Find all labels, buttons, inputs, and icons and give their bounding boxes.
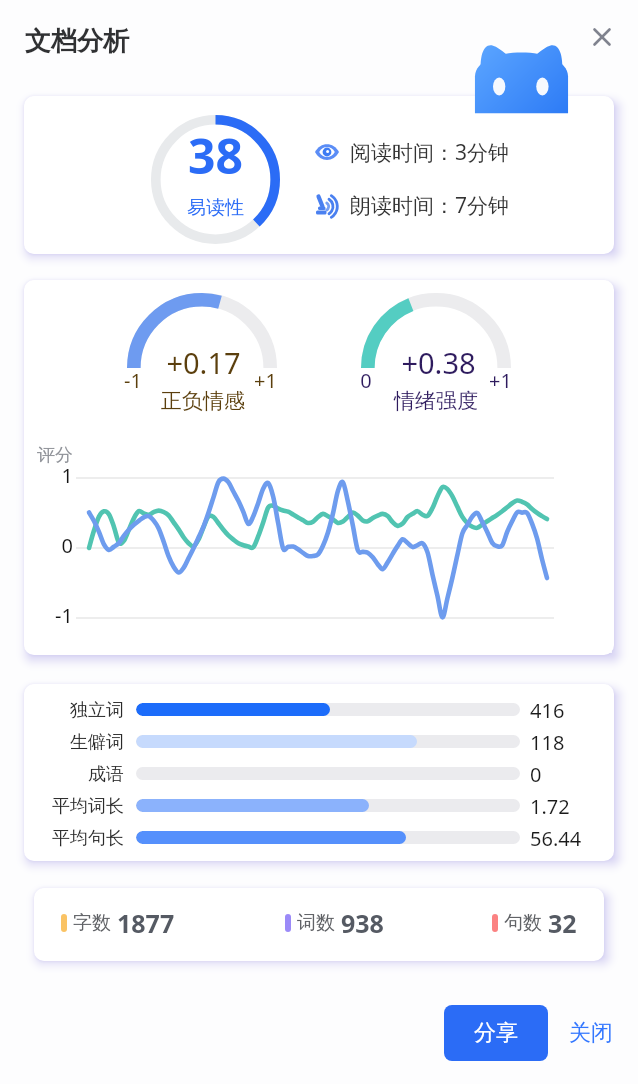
staticText: +0.38 [401, 343, 476, 382]
staticText: 正负情感 [161, 388, 245, 414]
staticText: 118 [530, 729, 565, 756]
staticText: 情绪强度 [394, 388, 478, 414]
staticText: 平均句长 [52, 827, 124, 850]
staticText: 分享 [474, 1019, 518, 1047]
staticText: 56.44 [530, 825, 582, 852]
staticText: 字数 [73, 911, 111, 935]
staticText: 0 [360, 367, 372, 394]
staticText: 32 [548, 906, 577, 940]
staticText: 关闭 [569, 1019, 613, 1047]
staticText: +0.17 [166, 343, 241, 382]
staticText: 平均词长 [52, 795, 124, 818]
staticText: +1 [489, 367, 512, 394]
staticText: 独立词 [70, 699, 124, 722]
staticText: 0 [530, 761, 542, 788]
staticText: 评分 [37, 444, 73, 467]
staticText: 文档分析 [25, 25, 129, 58]
staticText: 938 [341, 906, 384, 940]
staticText: 词数 [297, 911, 335, 935]
button[interactable]: 分享 [444, 1005, 548, 1061]
staticText: 38 [188, 123, 243, 188]
staticText: 1.72 [530, 793, 570, 820]
staticText: 阅读时间：3分钟 [350, 138, 510, 167]
staticText: 1877 [117, 906, 175, 940]
staticText: -1 [124, 367, 142, 394]
button[interactable]: 关闭 [560, 1005, 622, 1061]
staticText: +1 [254, 367, 277, 394]
staticText: 1 [61, 462, 73, 489]
staticText: 句数 [504, 911, 542, 935]
staticText: 0 [61, 532, 73, 559]
staticText: -1 [55, 602, 73, 629]
staticText: 生僻词 [70, 731, 124, 754]
staticText: 成语 [88, 763, 124, 786]
button[interactable]: 关闭 [584, 19, 620, 55]
staticText: 易读性 [187, 196, 244, 220]
staticText: 朗读时间：7分钟 [350, 191, 510, 220]
staticText: 416 [530, 697, 565, 724]
